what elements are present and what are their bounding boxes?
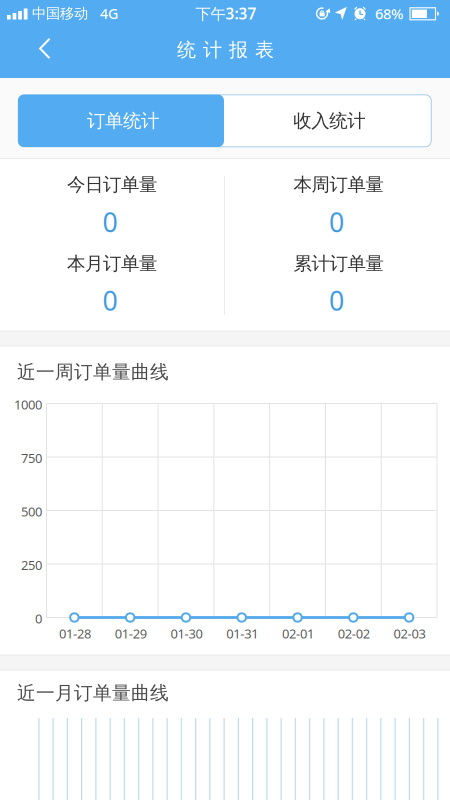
staticText: 累计订单量 [293, 252, 383, 275]
staticText: 1000 [14, 396, 42, 413]
staticText: 近一月订单量曲线 [17, 681, 169, 704]
staticText: 01-28 [59, 625, 91, 642]
staticText: 0 [35, 610, 42, 627]
button[interactable]: 收入统计 [18, 95, 431, 147]
staticText: 订单统计 [87, 109, 159, 132]
button[interactable]: 订单统计 [18, 95, 224, 147]
staticText: 68% [375, 3, 403, 23]
staticText: 500 [21, 503, 42, 520]
staticText: 01-30 [170, 625, 202, 642]
staticText: 0 [102, 283, 117, 318]
staticText: 本月订单量 [67, 252, 157, 275]
staticText: 4G [100, 4, 118, 23]
staticText: 02-02 [338, 625, 370, 642]
staticText: 0 [329, 283, 344, 318]
button[interactable]: Back [22, 26, 66, 70]
staticText: 近一周订单量曲线 [17, 360, 169, 383]
staticText: 下午3:37 [195, 3, 256, 24]
staticText: 今日订单量 [67, 173, 157, 196]
staticText: 01-31 [226, 625, 258, 642]
staticText: 750 [21, 449, 42, 467]
staticText: 中国移动 [32, 4, 88, 22]
staticText: 统计报表 [177, 38, 274, 62]
staticText: 02-01 [282, 625, 314, 642]
staticText: 本周订单量 [293, 173, 383, 196]
staticText: 250 [21, 556, 42, 574]
staticText: 收入统计 [293, 109, 365, 132]
staticText: 0 [329, 204, 344, 240]
staticText: 02-03 [394, 625, 426, 642]
staticText: 0 [102, 204, 117, 240]
staticText: 01-29 [115, 625, 147, 642]
